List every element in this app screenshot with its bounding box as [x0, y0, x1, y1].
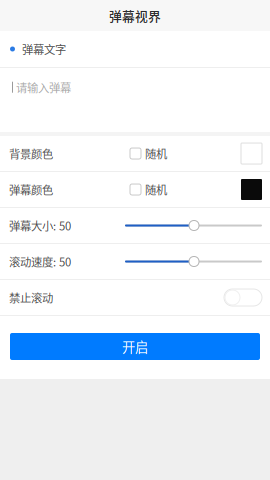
button[interactable]: 随机 — [130, 145, 167, 162]
staticText: 随机 — [145, 145, 167, 162]
staticText: 滚动速度: 50 — [9, 253, 71, 270]
staticText: 背景颜色 — [9, 145, 53, 162]
button[interactable]: 开启 — [10, 333, 260, 360]
button[interactable]: 随机 — [130, 181, 167, 198]
button[interactable]: 禁止滚动 — [224, 289, 262, 306]
staticText: 弹幕大小: 50 — [9, 217, 71, 234]
staticText: 开启 — [122, 337, 148, 356]
staticText: 弹幕文字 — [22, 41, 66, 57]
staticText: 弹幕颜色 — [9, 181, 53, 198]
staticText: 禁止滚动 — [9, 289, 53, 306]
staticText: 请输入弹幕 — [16, 79, 71, 95]
staticText: 弹幕视界 — [109, 6, 161, 25]
staticText: 随机 — [145, 181, 167, 198]
